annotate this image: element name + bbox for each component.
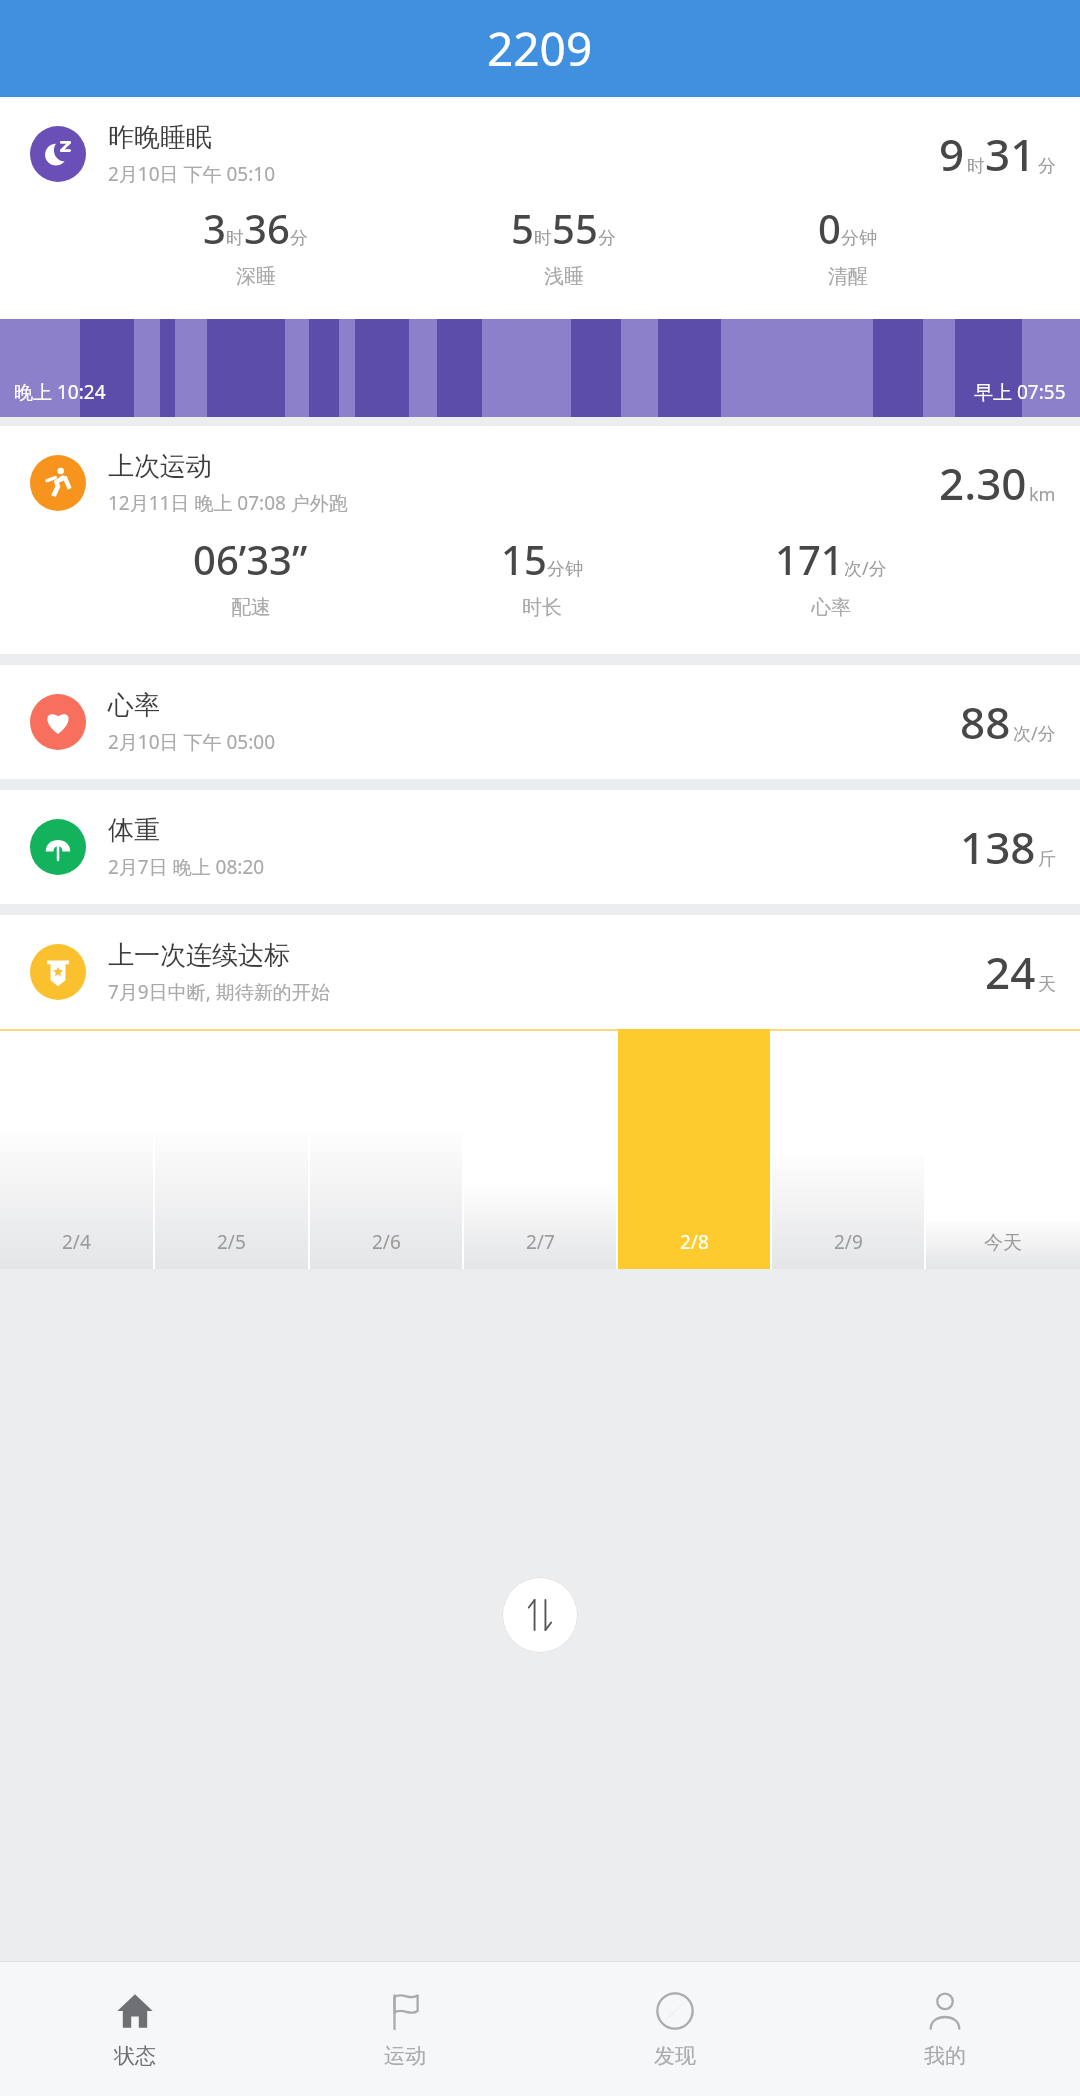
staticText: 06’33” <box>193 532 308 586</box>
staticText: 2209 <box>487 17 593 80</box>
staticText: 3 <box>203 201 226 255</box>
staticText: 时 <box>226 227 244 250</box>
staticText: 55 <box>552 201 598 255</box>
button[interactable]: 发现 <box>540 1962 810 2096</box>
staticText: 2月10日 下午 05:00 <box>108 729 276 755</box>
staticText: 138 <box>960 817 1036 877</box>
staticText: 天 <box>1038 973 1056 996</box>
staticText: 时 <box>967 155 985 178</box>
staticText: 清醒 <box>828 264 868 289</box>
button[interactable]: 2/5 <box>155 1132 308 1269</box>
staticText: 次/分 <box>844 556 887 581</box>
staticText: 深睡 <box>236 264 276 289</box>
staticText: 次/分 <box>1013 721 1056 746</box>
staticText: 今天 <box>984 1231 1022 1255</box>
staticText: 体重 <box>108 814 160 847</box>
button[interactable]: 今天 <box>926 1221 1080 1269</box>
button[interactable]: 心率 <box>0 665 1080 779</box>
staticText: 36 <box>244 201 290 255</box>
staticText: 早上 07:55 <box>974 379 1066 405</box>
button[interactable]: 2/8 <box>618 1029 770 1269</box>
staticText: 2月10日 下午 05:10 <box>108 161 276 187</box>
button[interactable]: 运动 <box>270 1962 540 2096</box>
staticText: 上一次连续达标 <box>108 939 290 972</box>
staticText: 时 <box>534 227 552 250</box>
staticText: 上次运动 <box>108 450 212 483</box>
staticText: 12月11日 晚上 07:08 户外跑 <box>108 490 348 516</box>
staticText: 分钟 <box>547 558 583 581</box>
staticText: 9 <box>939 124 965 184</box>
staticText: 昨晚睡眠 <box>108 121 212 154</box>
staticText: 状态 <box>114 2043 156 2069</box>
staticText: 15 <box>501 532 547 586</box>
staticText: 2.30 <box>939 453 1027 513</box>
staticText: 浅睡 <box>544 264 584 289</box>
staticText: 24 <box>985 942 1036 1002</box>
staticText: 时长 <box>522 595 562 620</box>
staticText: 晚上 10:24 <box>14 379 106 405</box>
staticText: 2月7日 晚上 08:20 <box>108 854 265 880</box>
staticText: 配速 <box>231 595 271 620</box>
staticText: km <box>1029 482 1056 507</box>
staticText: 运动 <box>384 2043 426 2069</box>
button[interactable]: 2/9 <box>772 1156 924 1269</box>
staticText: 分钟 <box>841 227 877 250</box>
button[interactable]: 2/6 <box>310 1132 462 1269</box>
button[interactable]: 状态 <box>0 1962 270 2096</box>
button[interactable]: 上次运动 <box>0 426 1080 516</box>
staticText: 2/8 <box>680 1229 709 1255</box>
staticText: 分 <box>290 227 308 250</box>
staticText: 2/5 <box>217 1229 246 1255</box>
staticText: 2/4 <box>62 1229 91 1255</box>
staticText: 31 <box>985 124 1036 184</box>
button[interactable]: Sync data <box>502 1577 578 1653</box>
staticText: 我的 <box>924 2043 966 2069</box>
staticText: 88 <box>960 692 1011 752</box>
staticText: 2/9 <box>834 1229 863 1255</box>
staticText: 171 <box>775 532 844 586</box>
staticText: 斤 <box>1038 848 1056 871</box>
button[interactable]: 我的 <box>810 1962 1080 2096</box>
button[interactable]: 上一次连续达标 <box>0 915 1080 1029</box>
staticText: 2/7 <box>526 1229 555 1255</box>
button[interactable]: 2/4 <box>0 1132 153 1269</box>
staticText: 5 <box>511 201 534 255</box>
staticText: 分 <box>598 227 616 250</box>
staticText: 心率 <box>811 595 851 620</box>
staticText: 发现 <box>654 2043 696 2069</box>
staticText: 心率 <box>108 689 160 722</box>
staticText: 0 <box>818 201 841 255</box>
staticText: 2/6 <box>372 1229 401 1255</box>
button[interactable]: 2/7 <box>464 1187 616 1269</box>
button[interactable]: 昨晚睡眠 <box>0 97 1080 187</box>
staticText: 分 <box>1038 155 1056 178</box>
button[interactable]: 体重 <box>0 790 1080 904</box>
staticText: 7月9日中断, 期待新的开始 <box>108 979 330 1005</box>
